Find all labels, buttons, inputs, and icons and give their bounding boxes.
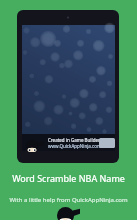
button[interactable]: Created in Game Builder bbox=[22, 134, 115, 151]
button[interactable]: Get it on Google Play bbox=[99, 138, 115, 148]
staticText: www.QuickAppNinja.com bbox=[48, 143, 102, 149]
staticText: Created in Game Builder bbox=[48, 137, 100, 143]
staticText: Word Scramble NBA Name bbox=[0, 172, 137, 184]
staticText: With a little help from QuickAppNinja.co… bbox=[0, 196, 137, 204]
